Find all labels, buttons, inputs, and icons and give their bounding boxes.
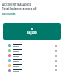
staticText: ACCOUNT BALANCE: [2, 3, 62, 7]
button[interactable]: $4,320: [3, 23, 61, 40]
button[interactable]: [0, 53, 64, 58]
staticText: accounts: [2, 12, 62, 16]
button[interactable]: [0, 68, 64, 72]
button[interactable]: [0, 58, 64, 63]
staticText: $4,320: [27, 31, 37, 35]
button[interactable]: [0, 43, 64, 48]
staticText: Total balance across all: [2, 7, 62, 11]
button[interactable]: [0, 48, 64, 53]
button[interactable]: [0, 63, 64, 68]
